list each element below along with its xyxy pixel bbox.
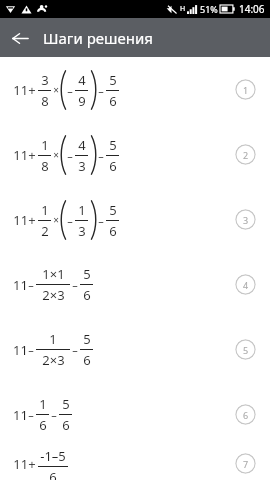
staticText: 6 (243, 409, 249, 421)
staticText: – (28, 407, 34, 422)
staticText: 51% (200, 3, 218, 15)
staticText: 6 (109, 92, 117, 110)
staticText: – (67, 213, 73, 228)
staticText: – (28, 277, 34, 292)
staticText: 8 (41, 157, 49, 175)
button[interactable]: Back (5, 23, 35, 53)
button[interactable]: 11+ (0, 447, 270, 480)
staticText: 5 (62, 395, 70, 413)
staticText: 11+ (13, 455, 36, 473)
staticText: – (67, 83, 73, 98)
staticText: – (98, 148, 104, 163)
staticText: 5 (109, 201, 117, 219)
staticText: × (53, 213, 59, 227)
button[interactable]: Step 3 (235, 209, 256, 230)
button[interactable]: 11 (0, 317, 270, 382)
staticText: – (72, 277, 78, 292)
staticText: 6 (39, 416, 47, 434)
staticText: 6 (109, 157, 117, 175)
staticText: -1–5 (40, 447, 66, 465)
staticText: 6 (109, 222, 117, 240)
staticText: – (98, 83, 104, 98)
staticText: – (67, 148, 73, 163)
staticText: 6 (83, 286, 91, 304)
button[interactable]: Step 4 (235, 274, 256, 295)
staticText: 11+ (13, 211, 36, 229)
staticText: 4 (78, 136, 86, 154)
staticText: 2 (243, 149, 249, 161)
staticText: 3 (41, 71, 49, 89)
staticText: Шаги решения (43, 28, 153, 48)
staticText: 1 (41, 136, 49, 154)
staticText: 1×1 (42, 265, 65, 283)
button[interactable]: Step 5 (235, 339, 256, 360)
staticText: 1 (39, 395, 47, 413)
staticText: 5 (109, 71, 117, 89)
staticText: 5 (83, 265, 91, 283)
staticText: 2×3 (42, 351, 65, 369)
staticText: 2 (41, 222, 49, 240)
staticText: H (180, 4, 186, 14)
staticText: 6 (83, 351, 91, 369)
staticText: – (28, 342, 34, 357)
button[interactable]: 11+ (0, 187, 270, 252)
button[interactable]: Step 2 (235, 144, 256, 165)
staticText: – (51, 407, 57, 422)
staticText: × (53, 148, 59, 162)
staticText: 11 (13, 341, 28, 359)
staticText: 11 (13, 406, 28, 424)
staticText: – (72, 342, 78, 357)
button[interactable]: 11+ (0, 57, 270, 122)
staticText: 3 (243, 214, 249, 226)
staticText: 1 (243, 84, 249, 96)
staticText: 14:06 (239, 2, 265, 16)
staticText: 11+ (13, 81, 36, 99)
staticText: 3 (78, 157, 86, 175)
staticText: 8 (41, 92, 49, 110)
staticText: – (98, 213, 104, 228)
staticText: 9 (78, 92, 86, 110)
button[interactable]: Step 1 (235, 79, 256, 100)
staticText: 5 (109, 136, 117, 154)
button[interactable]: Step 7 (235, 453, 256, 474)
staticText: 6 (49, 468, 57, 480)
staticText: 4 (243, 279, 249, 291)
staticText: 7 (243, 458, 249, 470)
staticText: 11 (13, 276, 28, 294)
button[interactable]: Step 6 (235, 404, 256, 425)
staticText: 1 (49, 330, 57, 348)
staticText: 2×3 (42, 286, 65, 304)
staticText: 1 (41, 201, 49, 219)
button[interactable]: 11 (0, 252, 270, 317)
button[interactable]: 11+ (0, 122, 270, 187)
staticText: 6 (62, 416, 70, 434)
staticText: 5 (83, 330, 91, 348)
staticText: 4 (78, 71, 86, 89)
button[interactable]: 11 (0, 382, 270, 447)
staticText: 3 (78, 222, 86, 240)
staticText: 1 (78, 201, 86, 219)
staticText: 5 (243, 344, 249, 356)
staticText: 11+ (13, 146, 36, 164)
staticText: × (53, 83, 59, 97)
